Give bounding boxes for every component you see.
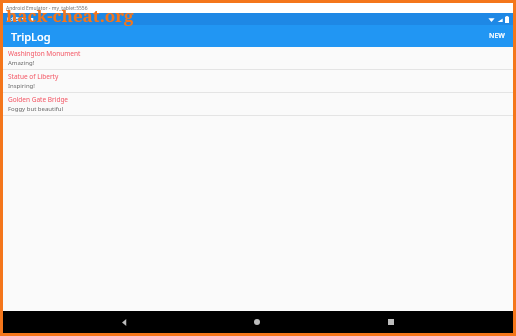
staticText: NEW	[489, 31, 505, 41]
staticText: Statue of Liberty	[8, 72, 59, 81]
staticText: Android Emulator - my_tablet:5556	[6, 5, 88, 12]
staticText: 6:05	[7, 15, 19, 23]
staticText: Amazing!	[8, 59, 35, 67]
button[interactable]: Recent apps	[379, 311, 403, 333]
button[interactable]: Golden Gate Bridge	[3, 93, 513, 115]
staticText: hack-cheat.org	[6, 4, 134, 27]
staticText: TripLog	[11, 29, 51, 44]
staticText: Washington Monument	[8, 49, 81, 58]
staticText: Foggy but beautiful	[8, 105, 64, 113]
staticText: Inspiring!	[8, 82, 35, 90]
button[interactable]: Home	[245, 311, 269, 333]
button[interactable]: NEW	[481, 27, 513, 45]
button[interactable]: Statue of Liberty	[3, 70, 513, 92]
button[interactable]: Washington Monument	[3, 47, 513, 69]
staticText: Golden Gate Bridge	[8, 95, 69, 104]
button[interactable]: Back	[112, 311, 136, 333]
